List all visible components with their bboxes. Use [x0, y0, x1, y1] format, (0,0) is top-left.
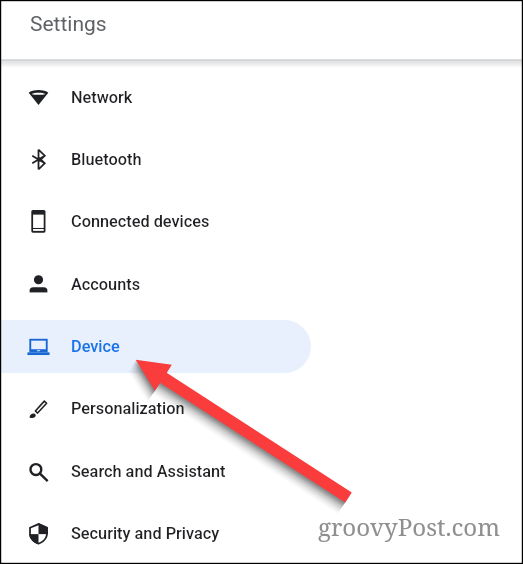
button[interactable]: Connected devices — [0, 190, 523, 252]
staticText: Settings — [30, 12, 107, 37]
staticText: Connected devices — [71, 212, 210, 231]
button[interactable]: Search and Assistant — [0, 440, 523, 502]
staticText: groovyPost.com — [318, 510, 501, 543]
button[interactable]: Bluetooth — [0, 128, 523, 190]
button[interactable]: Security and Privacy — [0, 502, 523, 564]
staticText: Network — [71, 88, 133, 107]
staticText: Bluetooth — [71, 150, 142, 169]
button[interactable]: Network — [0, 66, 523, 128]
button[interactable]: Personalization — [0, 377, 523, 439]
staticText: Device — [71, 337, 120, 356]
button[interactable]: Device — [0, 315, 523, 377]
staticText: Personalization — [71, 399, 185, 418]
staticText: Accounts — [71, 275, 141, 294]
staticText: Search and Assistant — [71, 462, 226, 481]
staticText: Security and Privacy — [71, 524, 220, 543]
button[interactable]: Accounts — [0, 253, 523, 315]
